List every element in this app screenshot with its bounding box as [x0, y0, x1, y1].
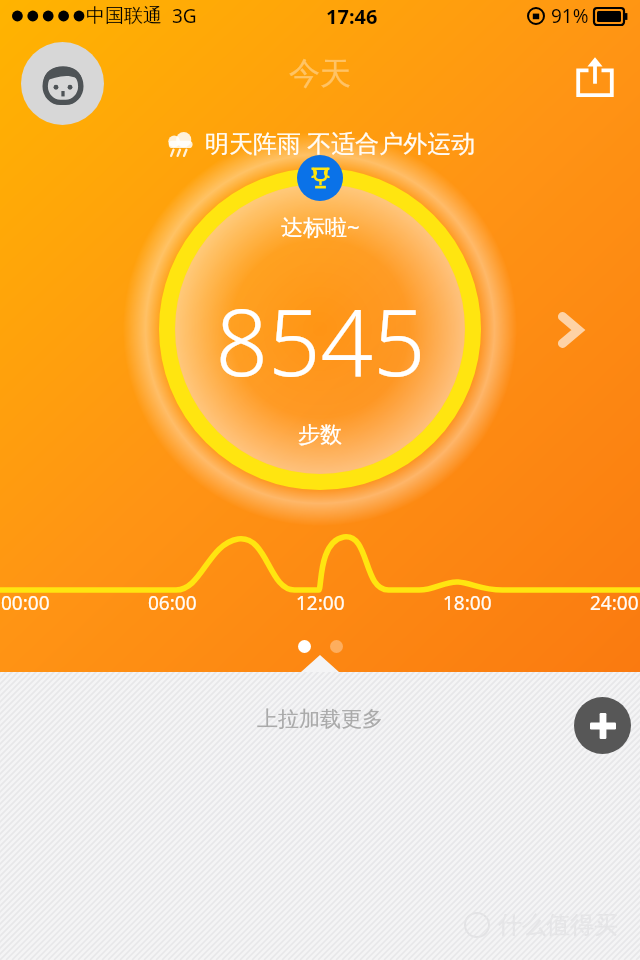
staticText: 明天阵雨 不适合户外运动: [205, 126, 476, 159]
staticText: 24:00: [590, 590, 639, 616]
button[interactable]: Profile: [21, 42, 104, 125]
staticText: 8545: [215, 278, 426, 403]
button[interactable]: Page 1: [298, 640, 311, 653]
staticText: 今天: [289, 54, 351, 93]
staticText: 18:00: [443, 590, 492, 616]
button[interactable]: Achievement: [297, 155, 343, 201]
staticText: 00:00: [1, 590, 50, 616]
button[interactable]: Page 2: [330, 640, 343, 653]
button[interactable]: Add: [574, 697, 631, 754]
staticText: 步数: [298, 421, 342, 449]
staticText: 12:00: [296, 590, 345, 616]
staticText: 91%: [551, 3, 589, 29]
staticText: 上拉加载更多: [257, 706, 383, 732]
staticText: 达标啦~: [281, 211, 360, 241]
staticText: 什么值得买: [498, 910, 618, 940]
staticText: 06:00: [148, 590, 197, 616]
button[interactable]: Next day: [538, 298, 602, 362]
staticText: 3G: [172, 3, 197, 29]
staticText: 17:46: [326, 3, 378, 30]
button[interactable]: Share: [567, 49, 623, 105]
staticText: 中国联通: [86, 4, 162, 28]
